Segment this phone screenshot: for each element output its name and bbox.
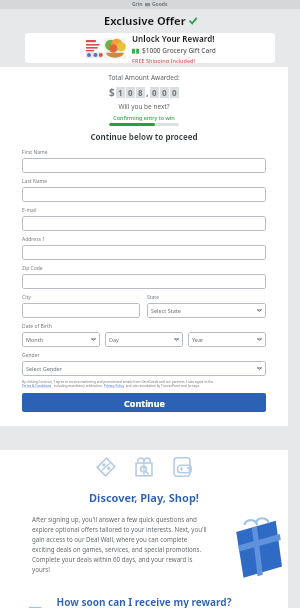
staticText: Exclusive Offer [104, 13, 186, 28]
button[interactable]: Play games [171, 456, 193, 478]
button[interactable]: Privacy Policy [104, 384, 125, 388]
button[interactable] [22, 187, 266, 202]
button[interactable]: Deals [95, 456, 117, 478]
staticText: After signing up, you'll answer a few qu… [32, 515, 210, 574]
staticText: Year [192, 336, 204, 343]
staticText: Day [109, 336, 119, 343]
staticText: Continue below to proceed [0, 131, 288, 142]
staticText: Address 1 [22, 236, 46, 243]
staticText: 0 [172, 87, 177, 98]
staticText: , [146, 86, 149, 98]
staticText: How soon can I receive my reward? [0, 595, 288, 608]
staticText: $ [109, 85, 115, 99]
staticText: 1 [118, 87, 123, 98]
staticText: 0 [128, 87, 133, 98]
button[interactable]: Select Gender [22, 361, 266, 376]
staticText: Date of Birth [22, 323, 52, 330]
button[interactable]: Continue [22, 393, 266, 412]
staticText: Select Gender [26, 365, 62, 372]
staticText: Goods [152, 1, 168, 8]
button[interactable]: Unlock Your Reward! [25, 33, 275, 63]
staticText: City [22, 294, 31, 301]
staticText: Total Amount Awarded: [0, 73, 288, 82]
button[interactable]: Month [22, 332, 100, 347]
staticText: FREE Shipping Included! [132, 57, 195, 63]
staticText: 0 [152, 87, 157, 98]
button[interactable] [22, 245, 266, 260]
staticText: $1000 Grocery Gift Card [142, 46, 216, 55]
button[interactable]: Day [105, 332, 183, 347]
staticText: First Name [22, 149, 48, 156]
button[interactable] [22, 303, 140, 318]
button[interactable]: Discover offers [133, 456, 155, 478]
staticText: Month [26, 336, 44, 343]
staticText: , including mandatory arbitration, [52, 384, 104, 388]
staticText: State [147, 294, 159, 301]
staticText: Grin [132, 1, 143, 8]
staticText: Continue [124, 397, 165, 409]
staticText: 8 [138, 87, 143, 98]
button[interactable]: Year [188, 332, 266, 347]
button[interactable] [22, 274, 266, 289]
staticText: and site recordation by TrustedForm and … [125, 384, 200, 388]
button[interactable] [22, 158, 266, 173]
staticText: Gender [22, 352, 40, 359]
button[interactable] [22, 216, 266, 231]
staticText: Discover, Play, Shop! [0, 490, 288, 505]
staticText: Zip Code [22, 265, 43, 272]
button[interactable]: Select State [147, 303, 266, 318]
button[interactable]: Terms & Conditions [22, 384, 52, 388]
staticText: Unlock Your Reward! [132, 33, 215, 44]
staticText: 0 [162, 87, 167, 98]
staticText: Confirming entry to win [0, 114, 288, 121]
staticText: Will you be next? [0, 102, 288, 111]
staticText: Last Name [22, 178, 48, 185]
staticText: E-mail [22, 207, 37, 214]
staticText: Select State [151, 307, 181, 314]
staticText: By clicking Continue, I agree to receive… [22, 380, 214, 384]
